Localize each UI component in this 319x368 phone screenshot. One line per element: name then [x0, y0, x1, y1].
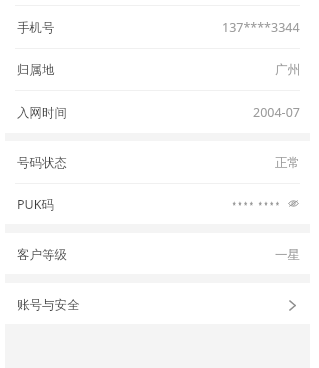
button[interactable]: 号码状态: [5, 141, 310, 183]
button[interactable]: 归属地: [5, 48, 310, 90]
button[interactable]: 账号与安全: [5, 283, 310, 324]
button[interactable]: 手机号: [5, 5, 310, 48]
staticText: 137****3344: [222, 19, 300, 36]
staticText: 2004-07: [253, 104, 300, 121]
button[interactable]: 客户等级: [5, 233, 310, 274]
staticText: 归属地: [17, 62, 55, 78]
button[interactable]: PUK码: [5, 183, 310, 224]
staticText: 账号与安全: [17, 297, 80, 313]
staticText: 广州: [275, 62, 300, 78]
staticText: 入网时间: [17, 105, 67, 121]
staticText: 正常: [275, 155, 300, 171]
button[interactable]: 入网时间: [5, 90, 310, 133]
button[interactable]: Show PUK code: [286, 198, 300, 212]
staticText: 一星: [275, 247, 300, 263]
staticText: 客户等级: [17, 247, 67, 263]
staticText: PUK码: [17, 196, 54, 213]
staticText: 号码状态: [17, 155, 67, 171]
staticText: 手机号: [17, 20, 55, 36]
